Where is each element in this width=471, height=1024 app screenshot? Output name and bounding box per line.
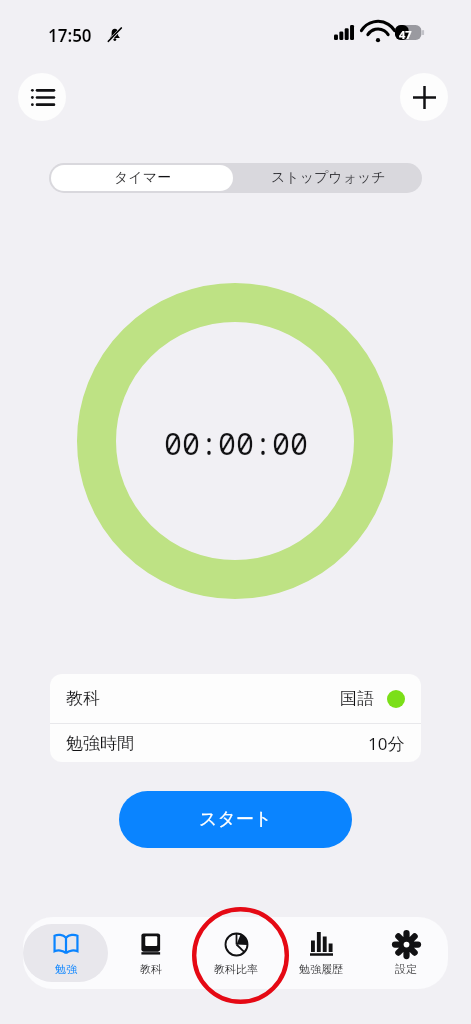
button[interactable]: 教科: [50, 674, 421, 723]
staticText: 教科: [66, 688, 100, 709]
button[interactable]: ストップウォッチ: [235, 163, 422, 193]
staticText: 国語: [340, 688, 374, 709]
staticText: 勉強時間: [66, 733, 134, 754]
staticText: 勉強履歴: [299, 962, 343, 976]
staticText: 17:50: [48, 24, 92, 47]
button[interactable]: 勉強: [23, 924, 108, 982]
button[interactable]: 教科比率: [201, 924, 271, 982]
staticText: 設定: [395, 962, 417, 976]
staticText: 00:00:00: [164, 423, 308, 464]
staticText: 教科: [140, 962, 162, 976]
button[interactable]: List: [18, 73, 66, 121]
button[interactable]: スタート: [119, 791, 352, 848]
button[interactable]: Add: [400, 73, 448, 121]
staticText: ストップウォッチ: [271, 169, 386, 187]
button[interactable]: 教科: [116, 924, 186, 982]
staticText: 勉強: [55, 962, 77, 976]
button[interactable]: 勉強時間: [50, 724, 421, 762]
button[interactable]: 勉強履歴: [286, 924, 356, 982]
staticText: タイマー: [114, 169, 171, 187]
staticText: 10分: [368, 732, 405, 755]
button[interactable]: タイマー: [51, 165, 233, 191]
staticText: スタート: [199, 808, 273, 831]
staticText: 47: [399, 27, 412, 42]
staticText: 教科比率: [214, 962, 258, 976]
button[interactable]: 設定: [371, 924, 441, 982]
